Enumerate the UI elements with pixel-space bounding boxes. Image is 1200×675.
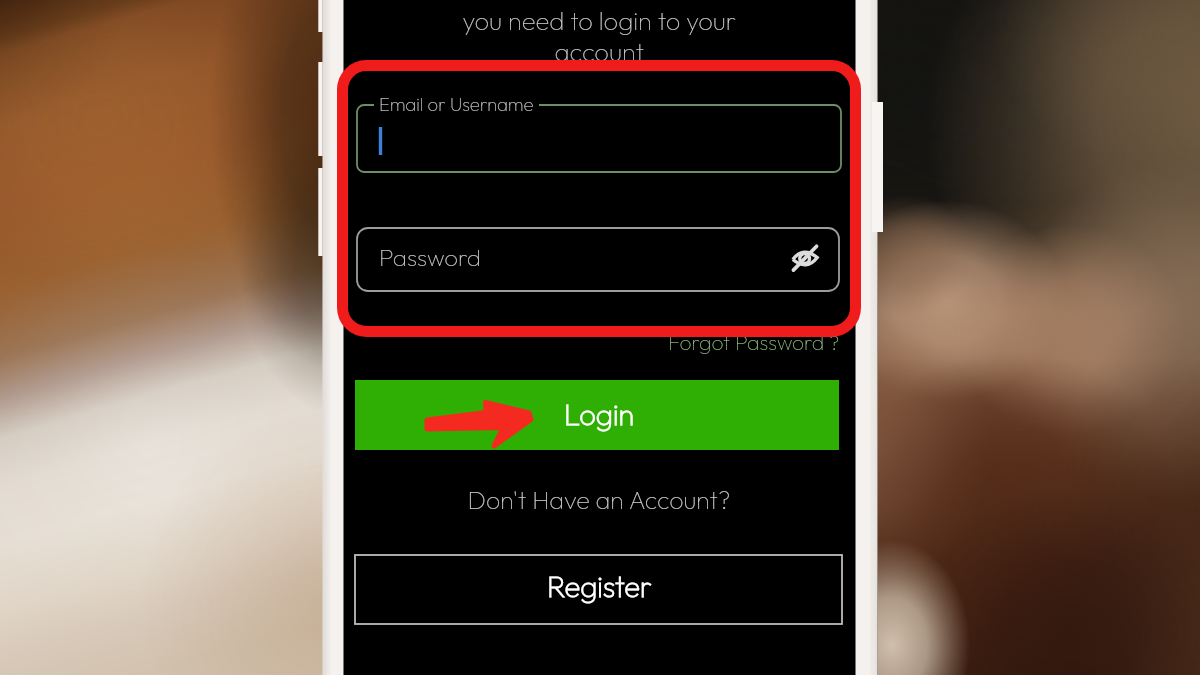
button[interactable]: Forgot Password ? [667, 333, 841, 359]
button[interactable]: Register [355, 555, 842, 624]
button[interactable]: Login [355, 380, 839, 450]
button[interactable]: Show password [786, 240, 824, 278]
button[interactable]: Email or Username field [357, 105, 841, 172]
button[interactable]: Password field [357, 229, 839, 291]
